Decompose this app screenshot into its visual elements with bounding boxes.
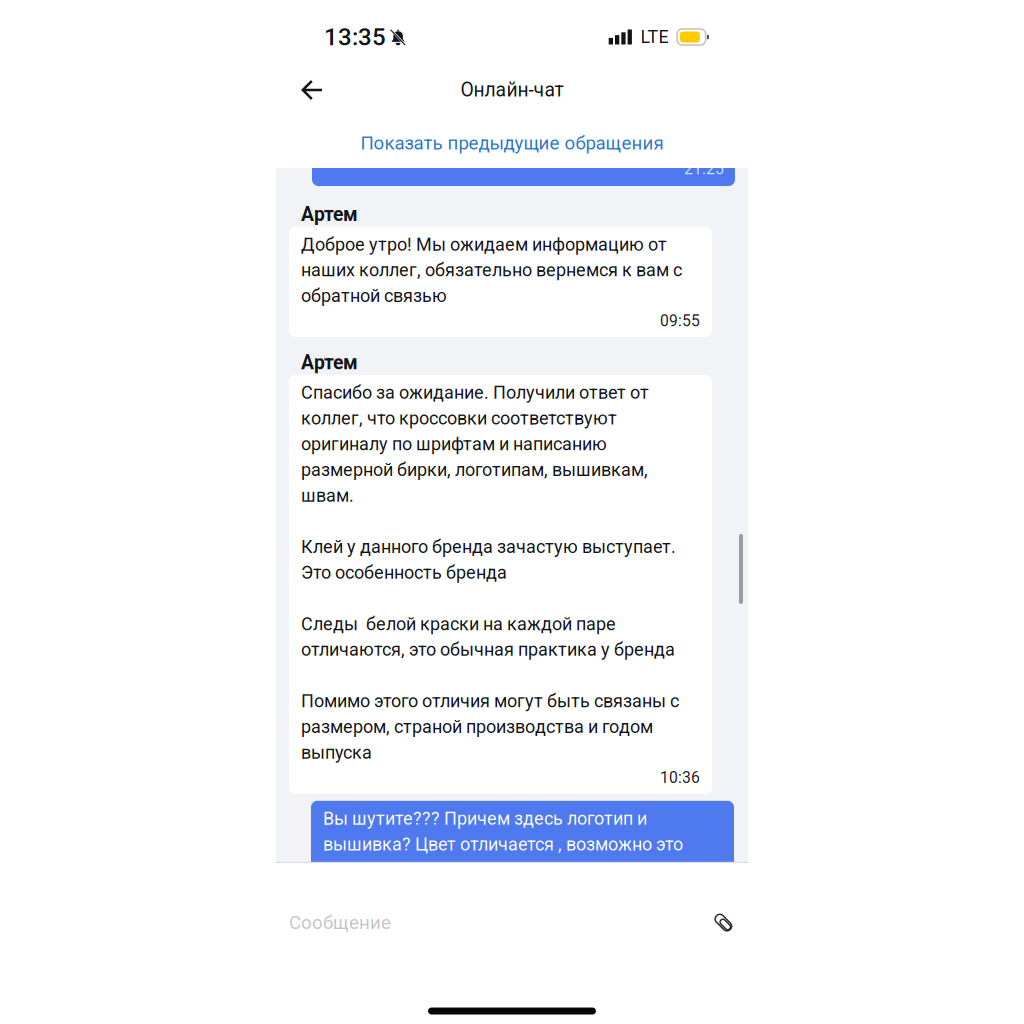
staticText: 21:25 (684, 160, 724, 178)
staticText: Следы белой краски на каждой паре (301, 613, 616, 635)
staticText: LTE (640, 26, 668, 47)
button[interactable]: Показать предыдущие обращения (276, 127, 748, 169)
staticText: 13:35 (324, 23, 386, 51)
staticText: Помимо этого отличия могут быть связаны … (301, 691, 679, 712)
staticText: Спасибо за ожидание. Получили ответ от (301, 382, 649, 403)
staticText: швам. (301, 485, 354, 506)
staticText: отличаются, это обычная практика у бренд… (301, 639, 675, 660)
staticText: выпуска (301, 742, 372, 763)
staticText: Вы шутите??? Причем здесь логотип и (323, 808, 647, 829)
staticText: обратной связью (301, 285, 447, 306)
staticText: 09:55 (660, 312, 700, 330)
staticText: Показать предыдущие обращения (360, 132, 663, 154)
staticText: наших коллег, обязательно вернемся к вам… (301, 260, 682, 281)
staticText: Артем (301, 351, 358, 374)
staticText: Онлайн-чат (460, 79, 563, 101)
button[interactable]: Прикрепить файл (704, 903, 743, 942)
staticText: оригиналу по шрифтам и написанию (301, 434, 607, 455)
staticText: Это особенность бренда (301, 562, 507, 583)
button[interactable]: Назад (289, 67, 335, 112)
staticText: вышивка? Цвет отличается , возможно это (323, 834, 683, 855)
staticText: 10:36 (660, 768, 700, 787)
staticText: коллег, что кроссовки соответствуют (301, 408, 617, 429)
staticText: Артем (301, 203, 358, 226)
staticText: Доброе утро! Мы ожидаем информацию от (301, 234, 667, 255)
staticText: размерной бирки, логотипам, вышивкам, (301, 459, 648, 480)
staticText: Сообщение (289, 912, 391, 933)
staticText: Клей у данного бренда зачастую выступает… (301, 536, 676, 557)
staticText: размером, страной производства и годом (301, 716, 653, 737)
